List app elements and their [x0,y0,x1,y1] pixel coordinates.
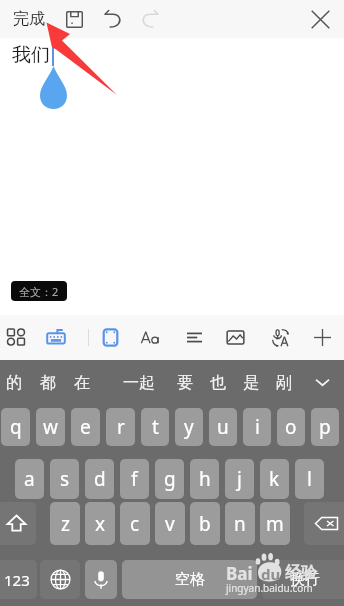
staticText: 也 [210,373,226,393]
staticText: q [10,414,22,440]
staticText: 一起 [123,373,155,393]
staticText: f [131,466,138,492]
staticText: 在 [74,373,90,393]
button[interactable]: Focus mode [92,319,128,355]
button[interactable]: c [120,502,150,545]
button[interactable]: m [260,502,290,545]
staticText: s [60,466,70,492]
staticText: 我们 [12,43,50,67]
staticText: 都 [40,373,56,393]
button[interactable]: i [243,408,271,446]
staticText: 的 [6,373,22,393]
button[interactable]: g [155,459,184,499]
button[interactable]: q [1,408,30,446]
button[interactable]: Close [301,0,339,38]
button[interactable]: New line [262,560,344,599]
button[interactable]: o [277,408,305,446]
staticText: n [234,511,246,537]
staticText: 空格 [175,570,205,589]
button[interactable]: 都 [33,360,63,405]
button[interactable]: 在 [67,360,97,405]
staticText: v [165,511,175,537]
button[interactable]: Shift [0,502,36,545]
button[interactable]: Undo [93,0,131,38]
staticText: l [307,466,312,492]
button[interactable]: Space [122,560,257,599]
staticText: b [199,511,211,537]
staticText: g [164,466,176,492]
staticText: m [266,511,284,537]
button[interactable]: Font [132,319,168,355]
button[interactable]: Redo [131,0,169,38]
staticText: k [269,466,280,492]
staticText: c [130,511,140,537]
button[interactable]: Add [304,319,340,355]
button[interactable]: u [209,408,237,446]
button[interactable]: d [85,459,114,499]
staticText: p [319,414,331,440]
staticText: 全文：2 [19,284,59,299]
button[interactable]: k [260,459,289,499]
staticText: 是 [243,373,259,393]
staticText: t [152,414,159,440]
staticText: j [237,466,242,492]
button[interactable]: Note card [38,319,74,355]
button[interactable]: 一起 [119,360,159,405]
button[interactable]: Change language [40,560,80,599]
button[interactable]: 剐 [269,360,299,405]
button[interactable]: 也 [203,360,233,405]
button[interactable]: Backspace [304,502,344,545]
button[interactable]: a [15,459,44,499]
button[interactable]: Align [176,319,212,355]
staticText: u [217,414,229,440]
staticText: o [285,414,297,440]
button[interactable]: h [190,459,219,499]
staticText: du [261,564,281,584]
button[interactable]: Switch to numbers [0,560,37,599]
button[interactable]: p [311,408,339,446]
button[interactable]: f [120,459,149,499]
button[interactable]: Save [55,0,93,38]
button[interactable]: w [36,408,65,446]
staticText: h [199,466,211,492]
staticText: 123 [4,570,30,590]
button[interactable]: b [190,502,220,545]
staticText: jingyan.baidu.com [226,581,313,595]
staticText: Bai [226,562,253,585]
staticText: 完成 [13,9,45,29]
button[interactable]: 的 [0,360,29,405]
button[interactable]: 是 [236,360,266,405]
staticText: 换行 [290,570,320,589]
staticText: r [117,414,125,440]
button[interactable]: 要 [170,360,200,405]
staticText: x [95,511,106,537]
button[interactable]: Apps [0,319,34,355]
button[interactable]: j [225,459,254,499]
staticText: 剐 [276,373,292,393]
button[interactable]: s [50,459,79,499]
button[interactable]: r [106,408,135,446]
button[interactable]: e [71,408,100,446]
staticText: 经验 [285,563,317,583]
button[interactable]: l [295,459,324,499]
staticText: i [255,414,260,440]
button[interactable]: n [225,502,255,545]
button[interactable]: Insert image [217,319,253,355]
button[interactable]: x [85,502,115,545]
button[interactable]: t [141,408,169,446]
button[interactable]: Translate [261,319,297,355]
button[interactable]: v [155,502,185,545]
staticText: e [80,414,91,440]
button[interactable]: More candidates [306,360,338,405]
staticText: 要 [177,373,193,393]
button[interactable]: z [50,502,80,545]
button[interactable]: Voice input [85,560,117,599]
staticText: z [61,511,70,537]
staticText: a [24,466,35,492]
button[interactable]: 全文：2 [11,281,67,301]
button[interactable]: 完成 [0,0,55,38]
staticText: d [94,466,106,492]
staticText: y [184,414,194,440]
button[interactable]: y [175,408,203,446]
staticText: w [43,414,58,440]
